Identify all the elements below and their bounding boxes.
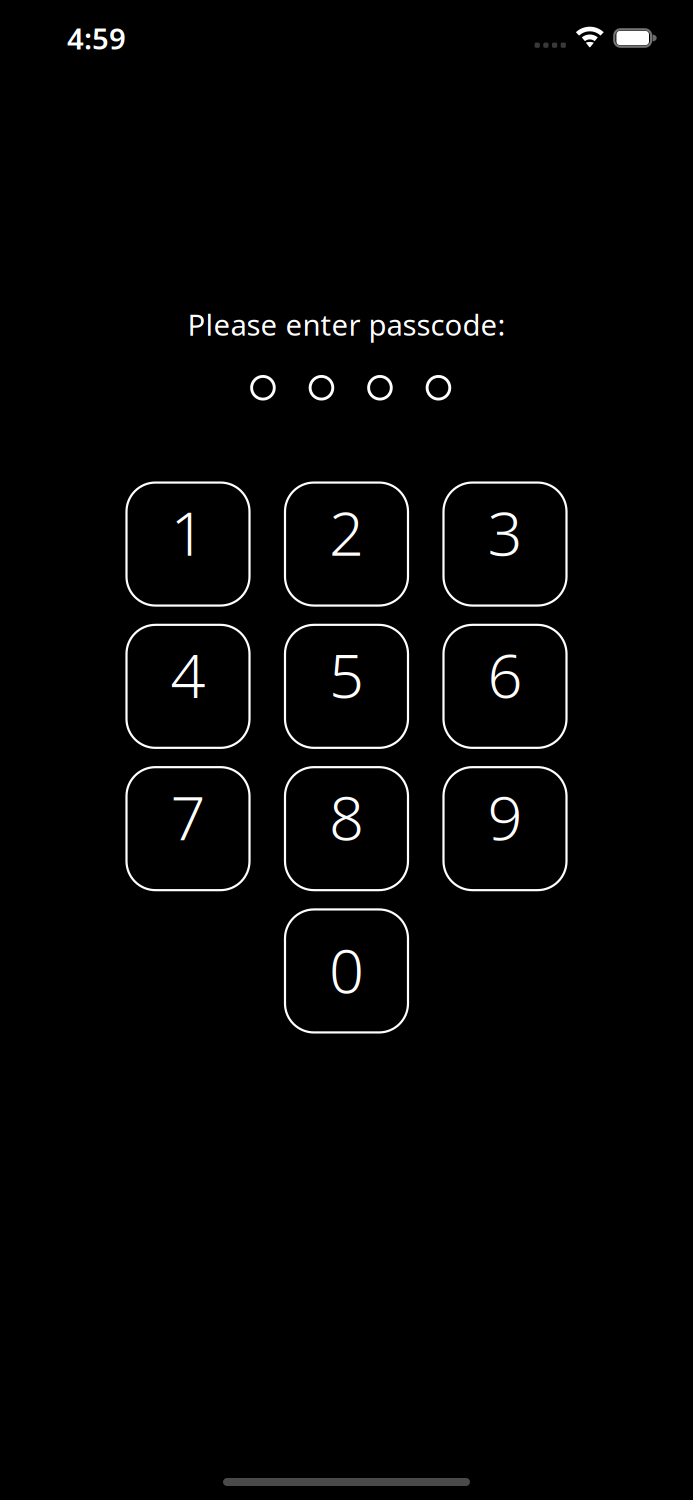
button[interactable]: 1 (126, 483, 249, 606)
button[interactable]: 3 (443, 483, 566, 606)
staticText: 9 (487, 776, 522, 857)
staticText: 1 (170, 491, 205, 572)
staticText: 2 (329, 491, 364, 572)
staticText: 3 (487, 491, 522, 572)
staticText: 5 (329, 633, 364, 715)
staticText: 8 (329, 776, 364, 857)
staticText: 7 (170, 776, 205, 857)
button[interactable]: 4 (126, 625, 249, 748)
button[interactable]: 0 (285, 909, 408, 1032)
button[interactable]: 5 (285, 625, 408, 748)
staticText: Please enter passcode: (187, 305, 505, 344)
staticText: 6 (487, 633, 522, 715)
staticText: 4 (170, 633, 205, 715)
button[interactable]: 7 (126, 767, 249, 890)
button[interactable]: 6 (443, 625, 566, 748)
button[interactable]: 8 (285, 767, 408, 890)
staticText: 0 (329, 929, 364, 1010)
staticText: 4:59 (67, 18, 126, 57)
button[interactable]: 9 (443, 767, 566, 890)
button[interactable]: 2 (285, 483, 408, 606)
